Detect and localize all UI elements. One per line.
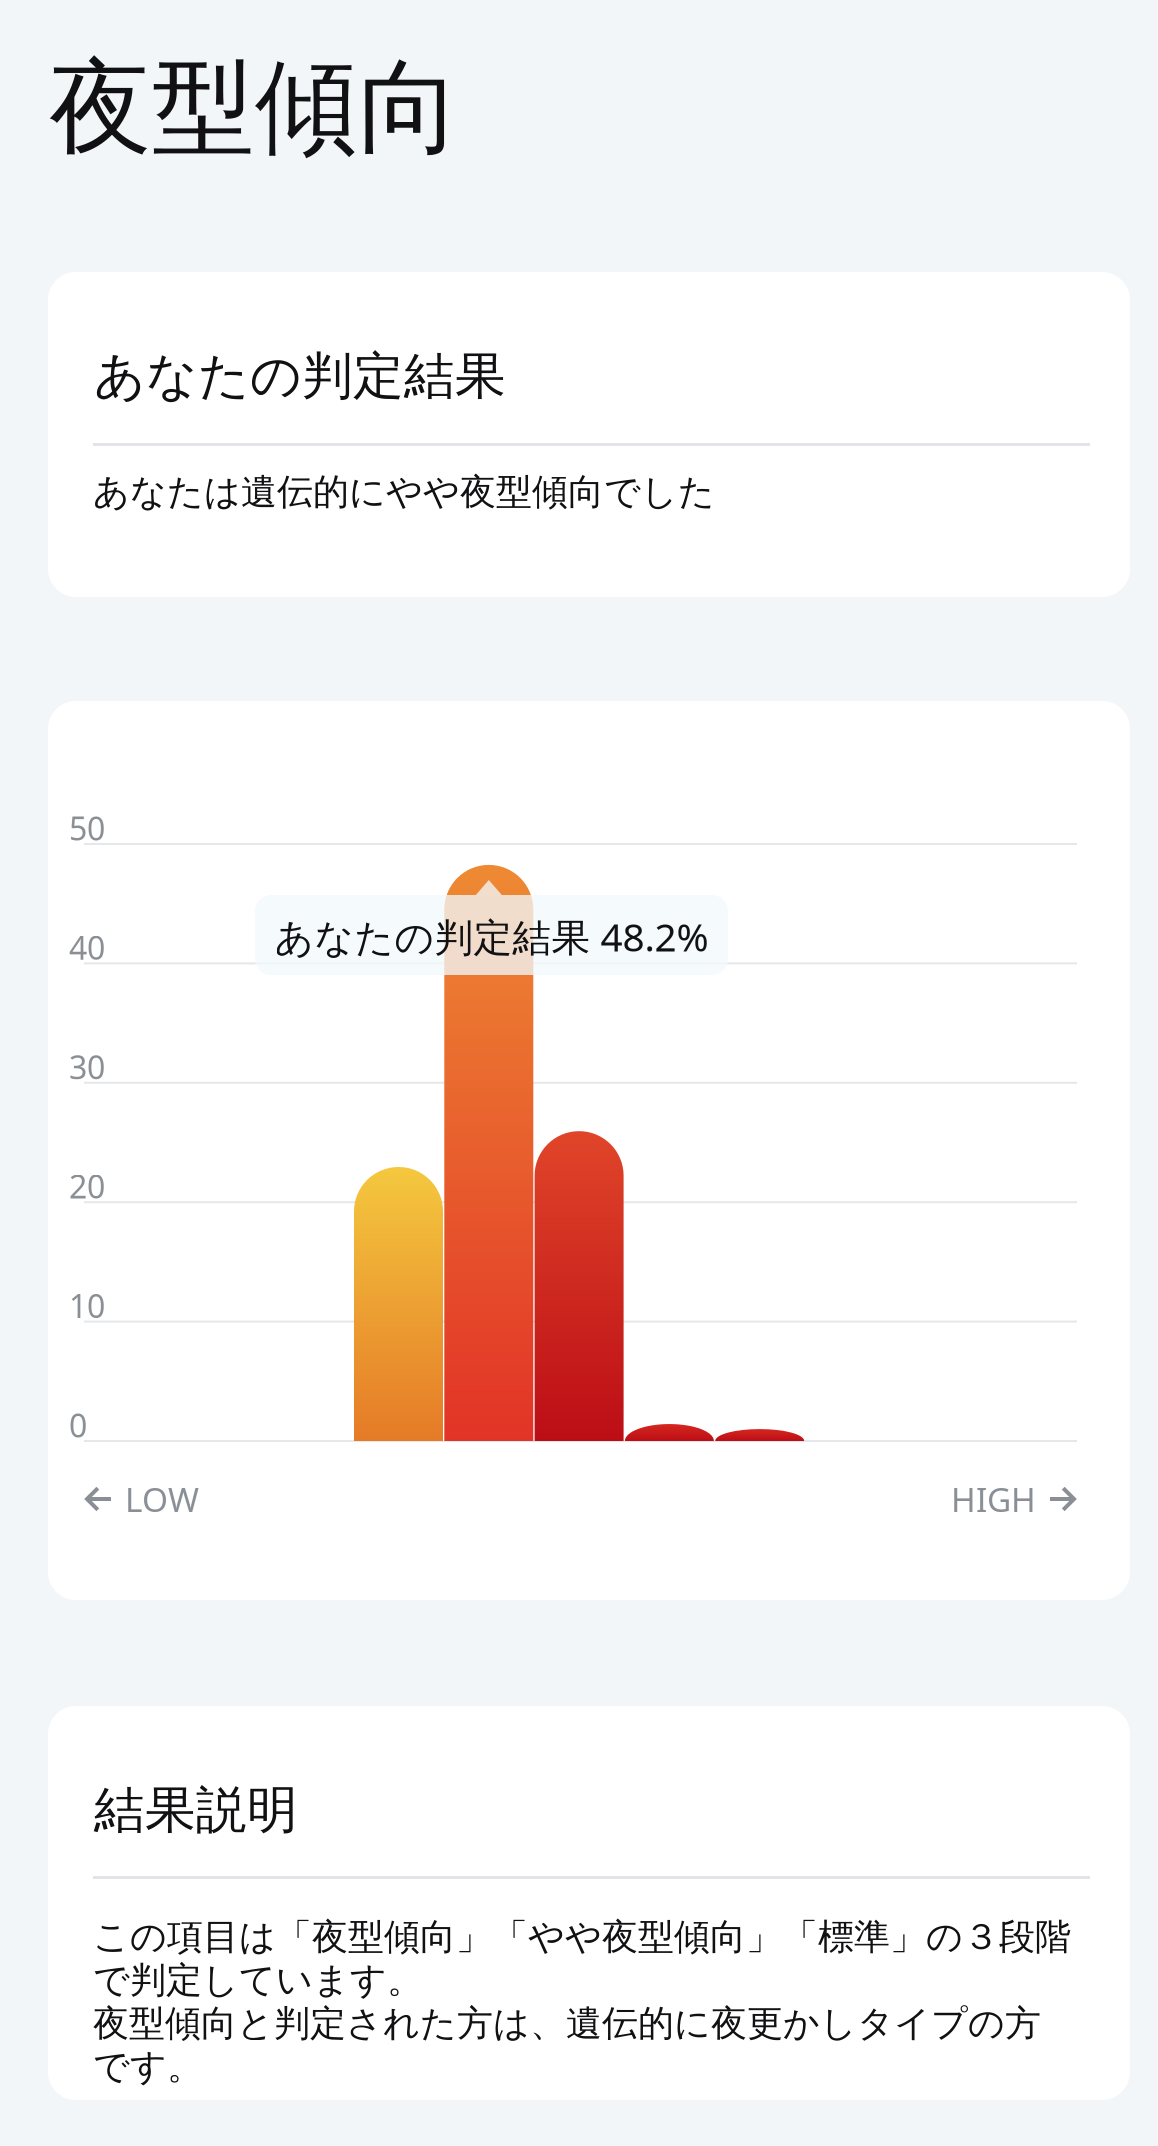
staticText: 夜型傾向と判定された方は、遺伝的に夜更かしタイプの方	[93, 2001, 1041, 2046]
staticText: 50	[69, 807, 105, 849]
staticText: 30	[69, 1046, 105, 1088]
staticText: HIGH	[951, 1477, 1036, 1521]
staticText: 20	[69, 1165, 105, 1207]
staticText: で判定しています。	[93, 1958, 423, 2002]
staticText: 夜型傾向	[49, 45, 461, 171]
staticText: LOW	[125, 1477, 199, 1521]
staticText: この項目は「夜型傾向」「やや夜型傾向」「標準」の３段階	[93, 1915, 1071, 1959]
staticText: 40	[69, 926, 105, 969]
button[interactable]: あなたの判定結果	[48, 272, 1130, 597]
button[interactable]: 0	[48, 701, 1130, 1600]
button[interactable]: 結果説明	[48, 1706, 1130, 2100]
staticText: あなたの判定結果 48.2%	[274, 911, 708, 962]
staticText: です。	[93, 2045, 203, 2089]
staticText: あなたは遺伝的にやや夜型傾向でした	[93, 470, 715, 514]
staticText: 結果説明	[94, 1779, 298, 1841]
staticText: あなたの判定結果	[94, 345, 506, 407]
staticText: 0	[69, 1404, 87, 1446]
staticText: 10	[69, 1284, 105, 1327]
